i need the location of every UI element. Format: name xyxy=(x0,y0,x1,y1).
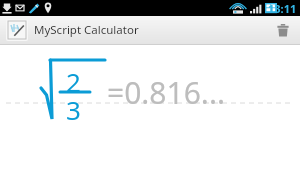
staticText: =0.816... xyxy=(107,72,225,113)
button[interactable]: MyScript Calculator icon xyxy=(6,19,28,41)
staticText: 13:11 xyxy=(268,1,297,16)
staticText: 2 xyxy=(66,64,81,99)
staticText: 3 xyxy=(66,92,81,127)
staticText: MyScript Calculator xyxy=(34,22,139,38)
button[interactable]: Clear xyxy=(270,17,296,43)
